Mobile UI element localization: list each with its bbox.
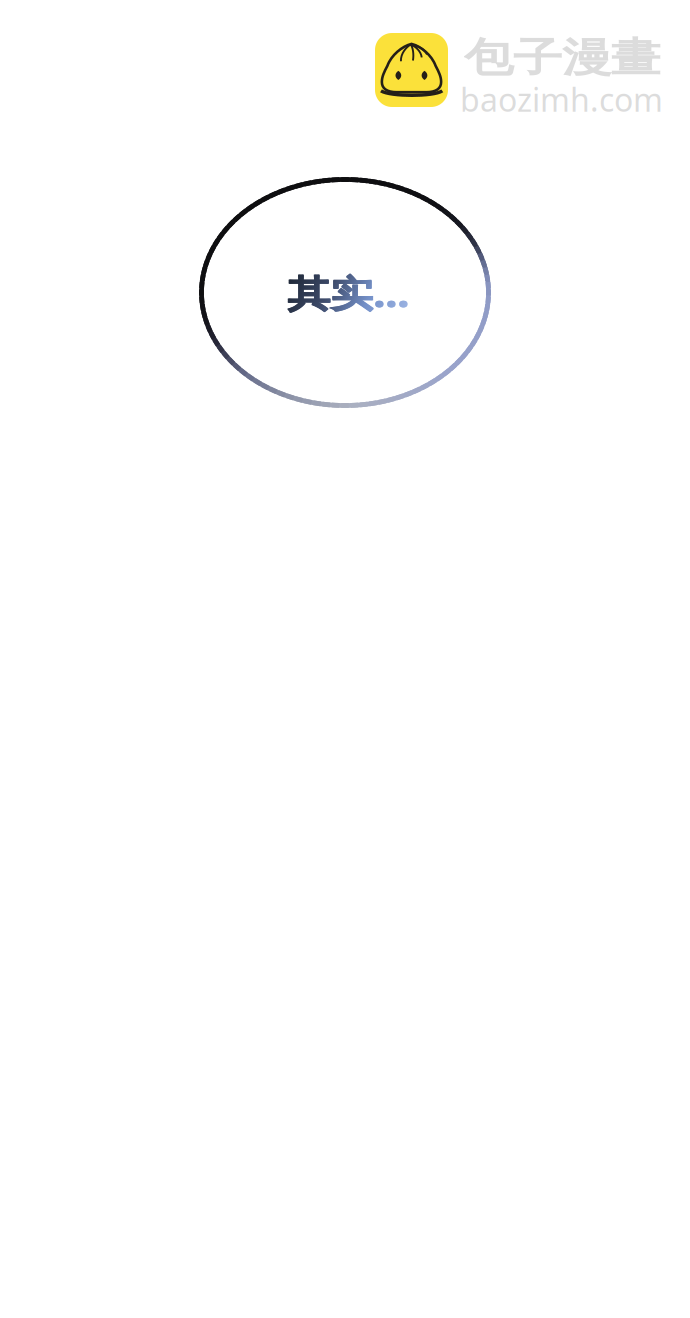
staticText: 包子漫畫 (464, 33, 660, 94)
staticText: baozimh.com (460, 78, 663, 120)
button[interactable]: baozimh.com (375, 33, 665, 113)
